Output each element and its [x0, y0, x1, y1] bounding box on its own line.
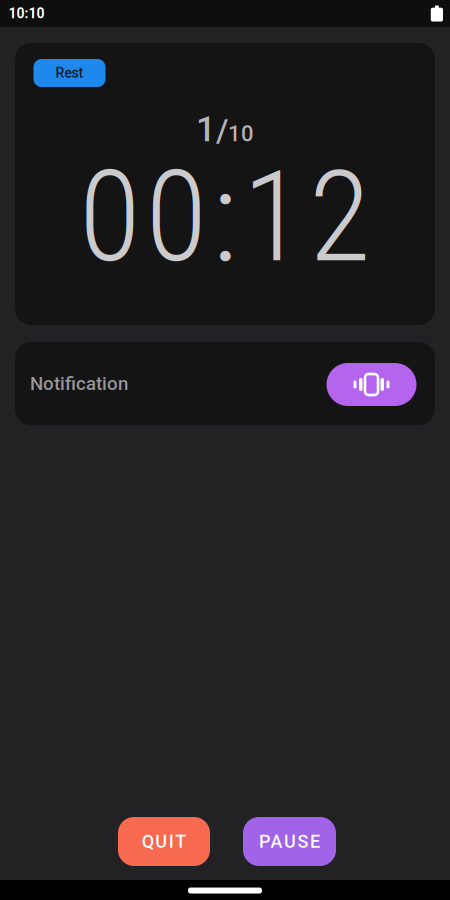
button[interactable]: PAUSE [243, 817, 336, 866]
button[interactable]: QUIT [118, 817, 210, 866]
staticText: 1 [196, 109, 216, 150]
staticText: / [216, 112, 228, 149]
staticText: 00:12 [79, 143, 371, 291]
staticText: 10 [228, 121, 254, 147]
button[interactable]: Rest [33, 59, 105, 87]
staticText: QUIT [142, 831, 186, 852]
staticText: PAUSE [259, 831, 320, 852]
staticText: Rest [55, 65, 83, 81]
button[interactable] [326, 362, 416, 405]
staticText: 10:10 [8, 5, 44, 22]
staticText: Notification [30, 373, 128, 394]
